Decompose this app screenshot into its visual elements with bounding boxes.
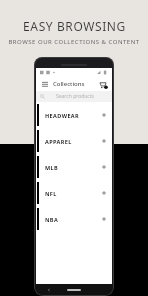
button[interactable]: MLB	[36, 154, 112, 180]
staticText: MLB	[45, 164, 59, 171]
button[interactable]: Shopping cart	[97, 79, 108, 90]
button[interactable]: APPAREL	[36, 128, 112, 154]
staticText: EASY BROWSING	[23, 18, 126, 34]
staticText: Search products	[56, 93, 94, 100]
button[interactable]: NBA	[36, 206, 112, 232]
staticText: NBA	[45, 216, 59, 223]
button[interactable]: NFL	[36, 180, 112, 206]
staticText: NFL	[45, 190, 57, 197]
staticText: HEADWEAR	[45, 112, 80, 119]
staticText: APPAREL	[45, 138, 72, 145]
button[interactable]: Search products	[36, 91, 112, 102]
button[interactable]: HEADWEAR	[36, 102, 112, 128]
button[interactable]: Open navigation menu	[40, 79, 50, 89]
staticText: Collections	[53, 80, 85, 88]
staticText: BROWSE OUR COLLECTIONS & CONTENT	[8, 38, 140, 46]
